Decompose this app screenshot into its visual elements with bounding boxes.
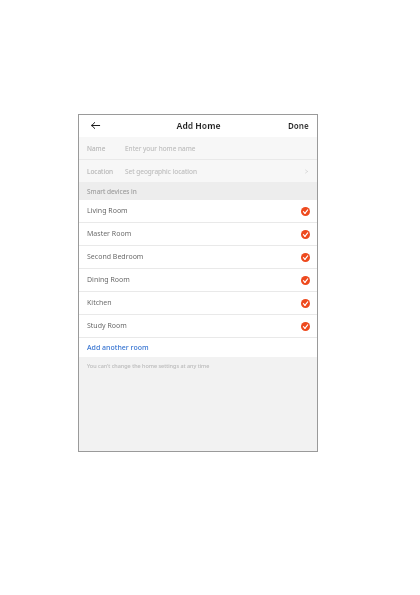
other: Selected: [301, 230, 310, 239]
button[interactable]: Kitchen: [78, 292, 318, 314]
staticText: Add Home: [176, 120, 221, 132]
staticText: Location: [87, 167, 119, 176]
staticText: Kitchen: [87, 298, 112, 308]
button[interactable]: Back: [78, 114, 112, 137]
button[interactable]: Add another room: [78, 338, 318, 357]
staticText: Name: [87, 144, 119, 153]
staticText: Living Room: [87, 206, 128, 216]
other: Selected: [301, 299, 310, 308]
other: Selected: [301, 207, 310, 216]
staticText: Study Room: [87, 321, 127, 331]
staticText: You can't change the home settings at an…: [87, 362, 210, 369]
staticText: Done: [288, 120, 309, 131]
staticText: Add another room: [87, 343, 149, 353]
button[interactable]: Study Room: [78, 315, 318, 337]
button[interactable]: Dining Room: [78, 269, 318, 291]
button[interactable]: Second Bedroom: [78, 246, 318, 268]
staticText: Second Bedroom: [87, 252, 144, 262]
staticText: Set geographic location: [125, 167, 197, 176]
staticText: Master Room: [87, 229, 132, 239]
staticText: Enter your home name: [125, 144, 196, 153]
staticText: Smart devices in: [87, 187, 137, 196]
other: Selected: [301, 253, 310, 262]
button[interactable]: Living Room: [78, 200, 318, 222]
button[interactable]: Location: [78, 160, 318, 182]
button[interactable]: Done: [279, 114, 318, 137]
other: Selected: [301, 276, 310, 285]
button[interactable]: Name: [78, 137, 318, 159]
other: Selected: [301, 322, 310, 331]
staticText: Dining Room: [87, 275, 130, 285]
button[interactable]: Master Room: [78, 223, 318, 245]
